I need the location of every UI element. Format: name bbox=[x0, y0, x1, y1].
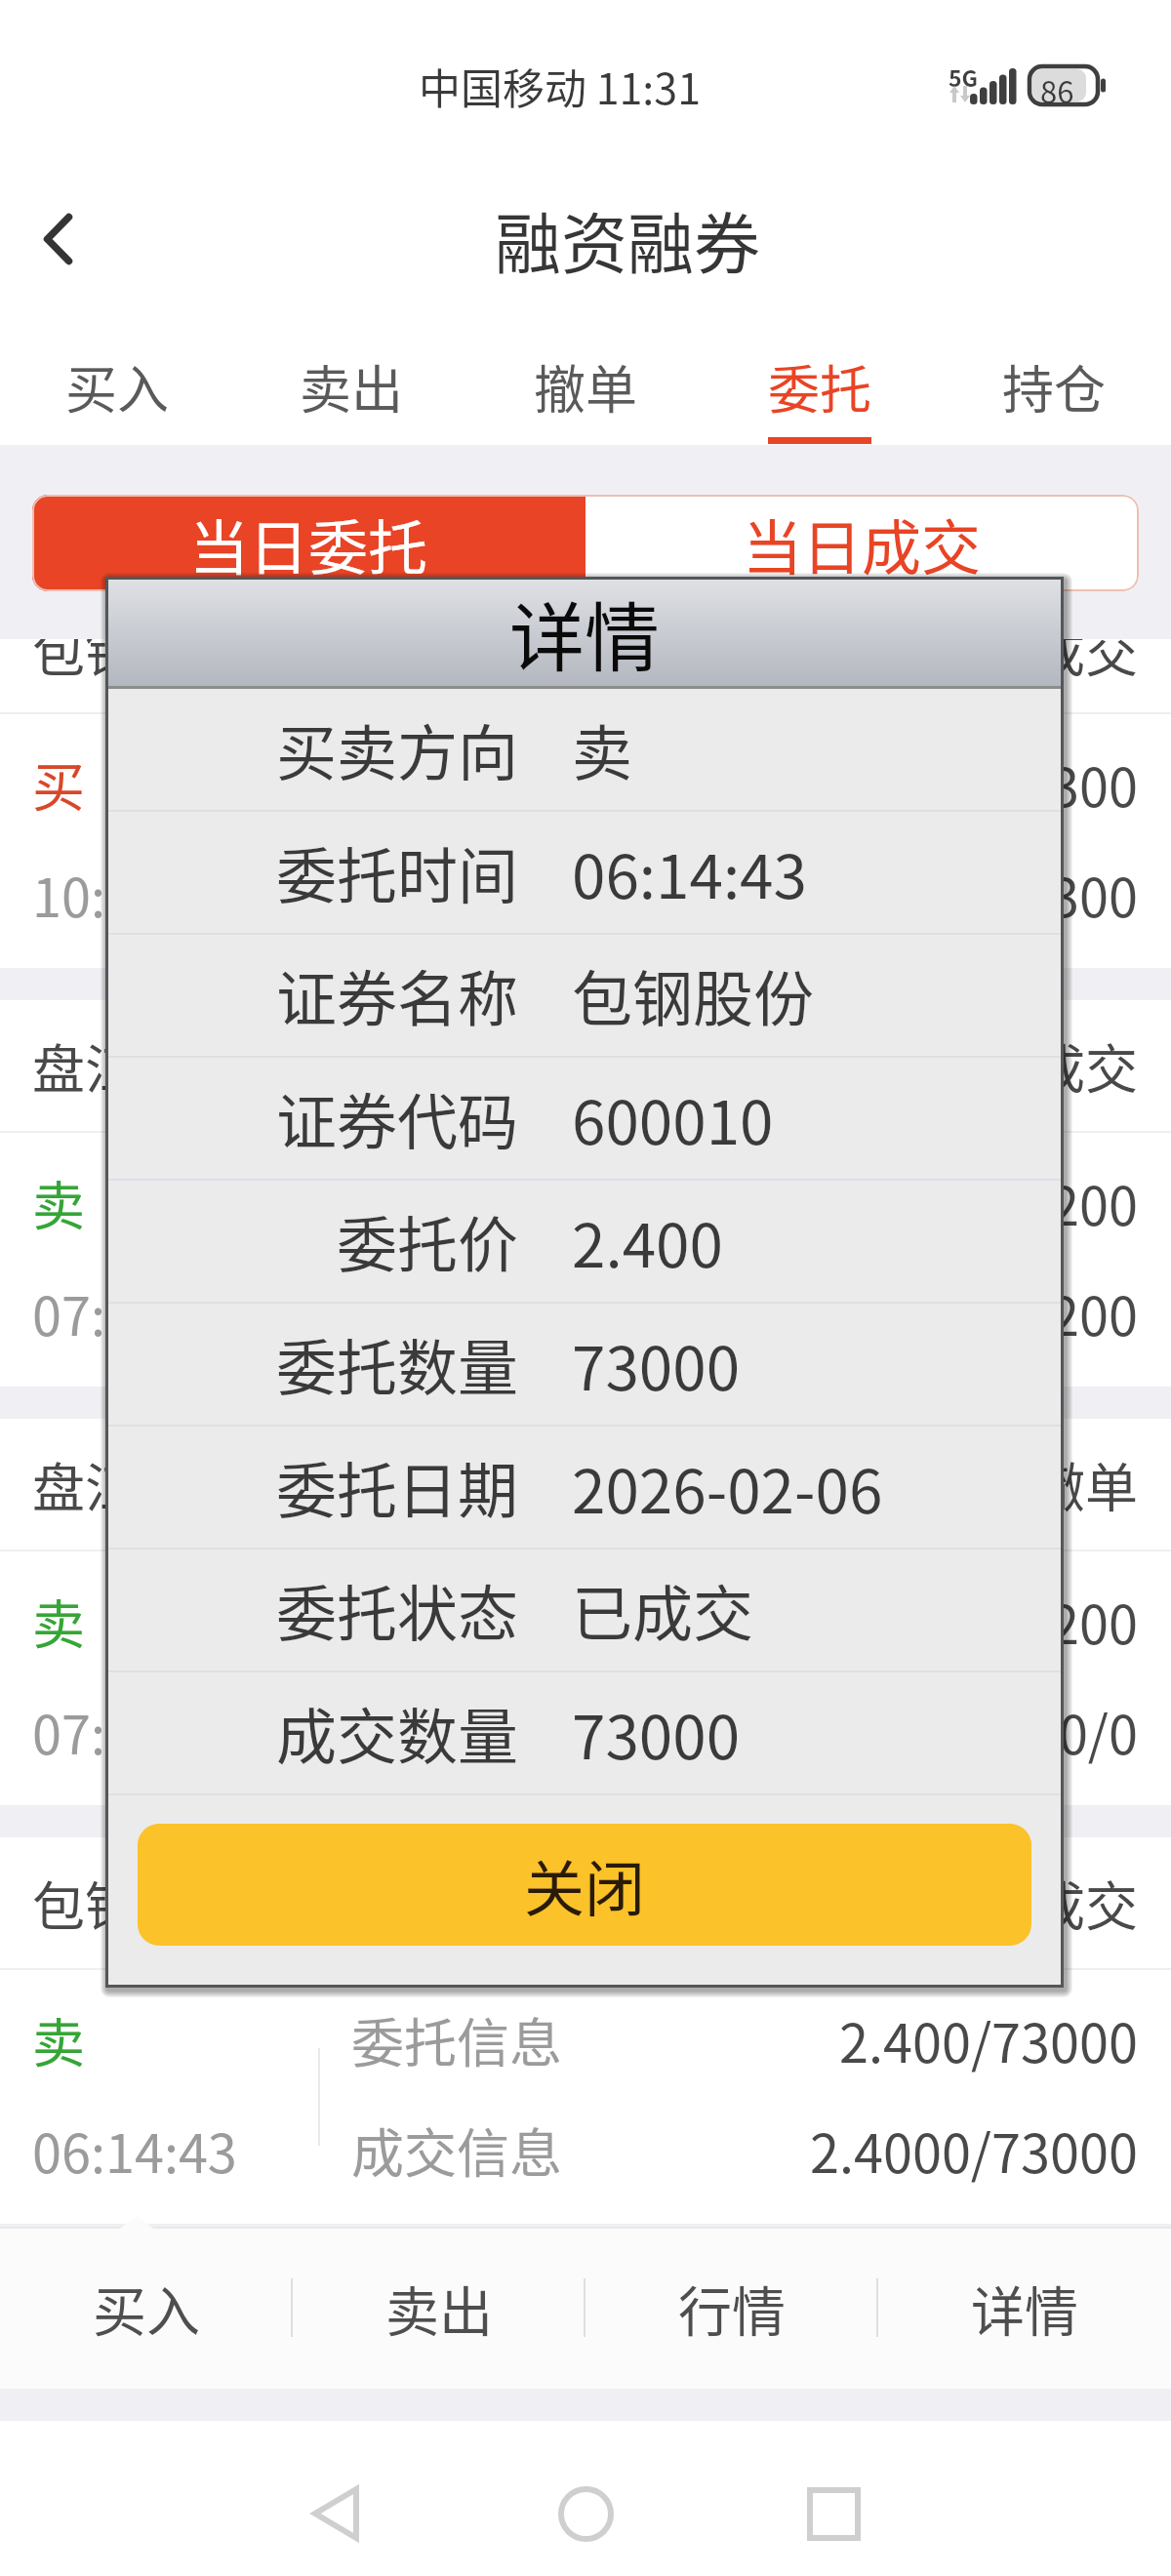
button[interactable]: 盘江股份 bbox=[0, 1000, 1171, 1387]
button[interactable]: 当日成交 bbox=[585, 495, 1139, 591]
button[interactable]: 持仓 bbox=[937, 322, 1171, 445]
staticText: 2.4000/73000 bbox=[810, 2112, 1138, 2188]
staticText: 盘江股份 bbox=[32, 1027, 243, 1104]
staticText: 2.4300/65300 bbox=[810, 856, 1138, 932]
staticText: 买卖方向 bbox=[276, 705, 519, 793]
staticText: 5.200/11200 bbox=[839, 1583, 1138, 1659]
staticText: 已成交 bbox=[980, 1027, 1138, 1104]
staticText: 2.400 bbox=[572, 1197, 723, 1285]
button[interactable]: 当日委托 bbox=[32, 495, 585, 591]
staticText: 06:14:43 bbox=[572, 828, 807, 916]
staticText: 买 bbox=[32, 745, 85, 822]
staticText: 撤单 bbox=[534, 349, 637, 424]
staticText: 成交信息 bbox=[351, 1693, 562, 1769]
staticText: 07:10:03 bbox=[32, 1693, 237, 1769]
staticText: 融资融券 bbox=[495, 191, 761, 287]
button[interactable]: Recents bbox=[765, 2445, 902, 2576]
staticText: 行情 bbox=[678, 2269, 787, 2347]
button[interactable]: Back bbox=[0, 156, 115, 322]
button[interactable]: 买入 bbox=[0, 2227, 293, 2389]
staticText: 卖 bbox=[572, 705, 633, 793]
staticText: 0.0000/0 bbox=[927, 1693, 1138, 1769]
staticText: 包钢股份 bbox=[32, 1865, 243, 1941]
staticText: 持仓 bbox=[1002, 349, 1106, 424]
button[interactable]: 撤单 bbox=[468, 322, 703, 445]
staticText: 10:05:21 bbox=[32, 856, 237, 932]
staticText: 当日成交 bbox=[743, 501, 982, 586]
staticText: 包钢股份 bbox=[32, 639, 243, 684]
staticText: 详情 bbox=[509, 579, 660, 687]
staticText: 已成交 bbox=[980, 1865, 1138, 1941]
staticText: 5G bbox=[949, 60, 979, 93]
staticText: 买入 bbox=[65, 349, 169, 424]
staticText: 详情 bbox=[971, 2269, 1079, 2347]
staticText: 委托信息 bbox=[351, 1164, 562, 1240]
staticText: 06:14:43 bbox=[32, 2112, 237, 2188]
button[interactable]: 详情 bbox=[878, 2227, 1171, 2389]
button[interactable]: 卖出 bbox=[234, 322, 468, 445]
staticText: 600010 bbox=[572, 1074, 774, 1162]
staticText: 盘江股份 bbox=[32, 1446, 243, 1522]
staticText: 73000 bbox=[572, 1320, 741, 1408]
staticText: 5.100/11200 bbox=[839, 1164, 1138, 1240]
staticText: 委托价 bbox=[337, 1197, 519, 1285]
staticText: 关闭 bbox=[524, 1841, 646, 1929]
staticText: 73000 bbox=[572, 1689, 741, 1777]
staticText: 卖出 bbox=[300, 349, 403, 424]
staticText: 委托日期 bbox=[276, 1443, 519, 1531]
staticText: 成交信息 bbox=[351, 2112, 562, 2188]
staticText: 已撤单 bbox=[980, 1446, 1138, 1522]
staticText: 委托时间 bbox=[276, 828, 519, 916]
button[interactable]: 盘江股份 bbox=[0, 1419, 1171, 1805]
staticText: 86 bbox=[1040, 68, 1074, 112]
staticText: 成交数量 bbox=[276, 1689, 519, 1777]
staticText: 委托信息 bbox=[351, 745, 562, 822]
staticText: 已成交 bbox=[980, 639, 1138, 684]
staticText: 证券代码 bbox=[276, 1074, 519, 1162]
button[interactable]: 关闭 bbox=[138, 1824, 1031, 1946]
staticText: 委托数量 bbox=[276, 1320, 519, 1408]
button[interactable]: 买入 bbox=[0, 322, 234, 445]
button[interactable]: 包钢股份 bbox=[0, 1837, 1171, 2224]
staticText: 委托信息 bbox=[351, 2001, 562, 2077]
staticText: 卖出 bbox=[385, 2269, 494, 2347]
staticText: 委托 bbox=[768, 349, 871, 424]
button[interactable]: 包钢股份 bbox=[0, 639, 1171, 968]
button[interactable]: 委托 bbox=[703, 322, 937, 445]
staticText: 卖 bbox=[32, 2001, 85, 2077]
staticText: 卖 bbox=[32, 1583, 85, 1659]
staticText: 2.400/73000 bbox=[839, 2001, 1138, 2077]
staticText: 当日委托 bbox=[189, 501, 428, 586]
button[interactable]: Back bbox=[267, 2445, 404, 2576]
staticText: 买入 bbox=[93, 2269, 201, 2347]
staticText: 已成交 bbox=[572, 1566, 754, 1654]
staticText: 5.1000/11200 bbox=[810, 1274, 1138, 1350]
staticText: 卖 bbox=[32, 1164, 85, 1240]
staticText: 委托状态 bbox=[276, 1566, 519, 1654]
staticText: 2.430/65300 bbox=[839, 745, 1138, 822]
button[interactable]: 卖出 bbox=[293, 2227, 585, 2389]
staticText: 委托信息 bbox=[351, 1583, 562, 1659]
staticText: 包钢股份 bbox=[572, 951, 815, 1039]
staticText: 证券名称 bbox=[276, 951, 519, 1039]
staticText: 中国移动 11:31 bbox=[419, 56, 702, 116]
staticText: 07:22:11 bbox=[32, 1274, 237, 1350]
staticText: 成交信息 bbox=[351, 856, 562, 932]
staticText: 成交信息 bbox=[351, 1274, 562, 1350]
button[interactable]: 行情 bbox=[585, 2227, 878, 2389]
button[interactable]: Home bbox=[517, 2445, 654, 2576]
staticText: 2026-02-06 bbox=[572, 1443, 883, 1531]
